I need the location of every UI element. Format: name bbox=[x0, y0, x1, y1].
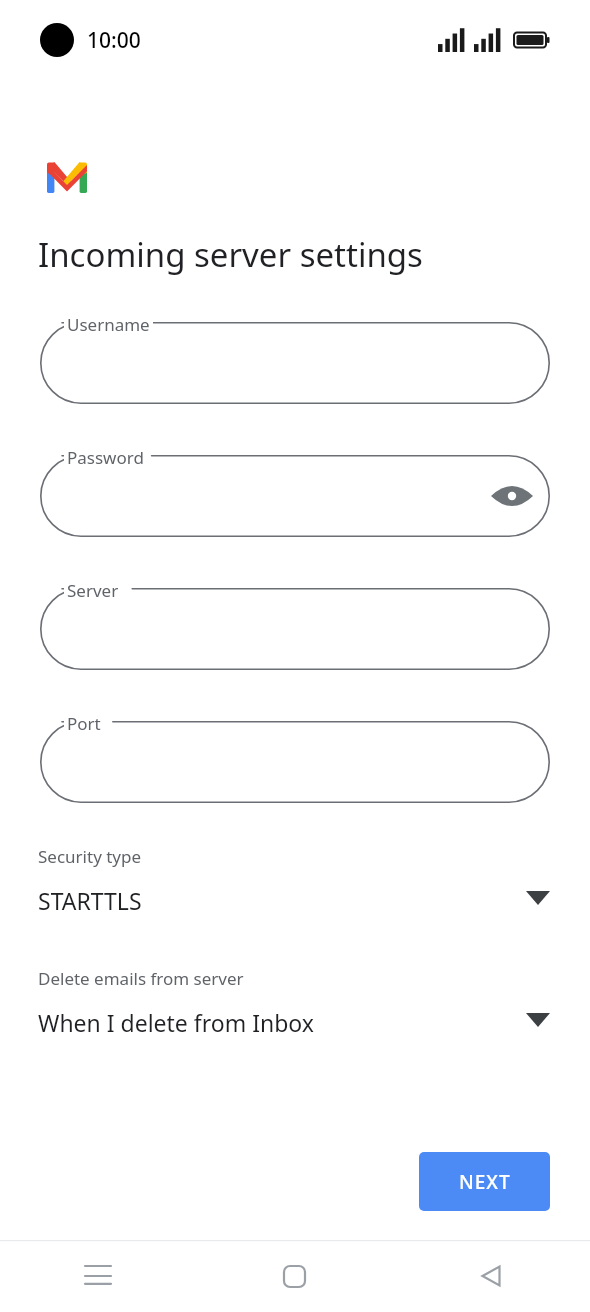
staticText: When I delete from Inbox bbox=[38, 1007, 314, 1038]
button[interactable]: Security type bbox=[38, 845, 550, 923]
button[interactable]: Username bbox=[40, 322, 550, 404]
staticText: Username bbox=[67, 313, 150, 336]
button[interactable]: Port bbox=[40, 721, 550, 803]
staticText: NEXT bbox=[459, 1169, 511, 1195]
staticText: Delete emails from server bbox=[38, 967, 244, 990]
button[interactable]: Password bbox=[40, 455, 550, 537]
button[interactable]: Server bbox=[40, 588, 550, 670]
staticText: STARTTLS bbox=[38, 885, 142, 916]
button[interactable]: Home bbox=[196, 1240, 392, 1312]
button[interactable]: Back bbox=[392, 1240, 590, 1312]
button[interactable]: Recent apps bbox=[0, 1240, 196, 1312]
staticText: Password bbox=[67, 446, 144, 469]
staticText: 10:00 bbox=[87, 26, 141, 55]
button[interactable]: NEXT bbox=[419, 1152, 550, 1211]
staticText: Incoming server settings bbox=[38, 232, 423, 277]
button[interactable]: Delete emails from server bbox=[38, 967, 550, 1045]
staticText: Server bbox=[67, 579, 119, 602]
staticText: Security type bbox=[38, 845, 142, 868]
staticText: Port bbox=[67, 712, 101, 735]
